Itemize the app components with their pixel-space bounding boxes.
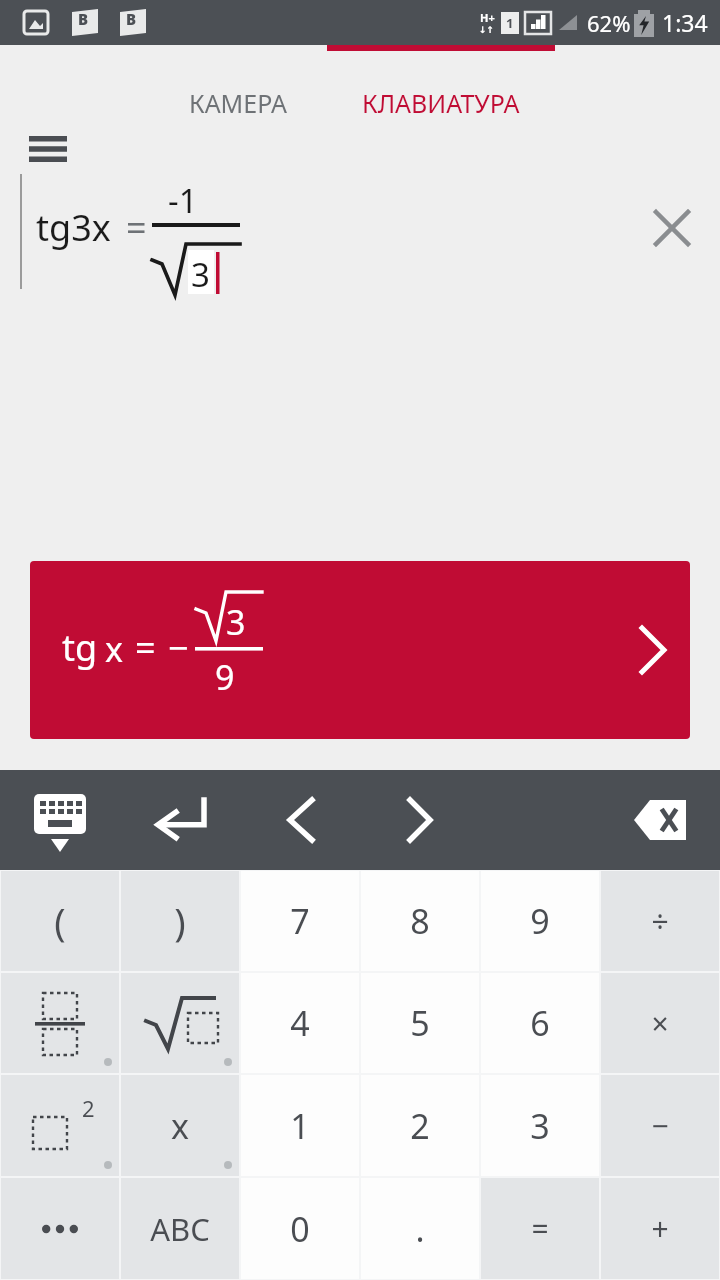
staticText: − [168,623,189,672]
button[interactable]: 6 [481,973,599,1073]
button[interactable]: КАМЕРА [150,51,325,155]
staticText: 5 [410,1000,430,1046]
button[interactable]: 5 [361,973,479,1073]
button[interactable]: Menu [14,115,82,183]
button[interactable]: + [601,1178,719,1279]
button[interactable]: 9 [481,871,599,971]
button[interactable]: ) [121,871,239,971]
staticText: x [105,626,123,672]
button[interactable]: . [361,1178,479,1279]
staticText: ↓↑ [479,25,495,35]
staticText: 7 [290,898,310,944]
staticText: КЛАВИАТУРА [362,86,520,120]
staticText: ÷ [651,901,669,942]
staticText: 3 [191,252,210,297]
button[interactable]: x [121,1075,239,1176]
button[interactable]: 8 [361,871,479,971]
button[interactable]: 4 [241,973,359,1073]
button[interactable]: 3 [481,1075,599,1176]
staticText: × [651,1003,669,1044]
staticText: 4 [290,1000,310,1046]
button[interactable]: Square [1,1075,119,1176]
staticText: . [415,1206,425,1252]
button[interactable]: Square root [121,973,239,1073]
staticText: -1 [168,178,198,223]
button[interactable]: 1 [241,1075,359,1176]
staticText: ABC [150,1208,210,1250]
staticText: tg [62,623,98,672]
button[interactable]: КЛАВИАТУРА [327,51,555,155]
staticText: x [171,1103,189,1149]
button[interactable]: Clear [638,194,706,262]
staticText: КАМЕРА [189,86,287,120]
staticText: 9 [530,898,550,944]
staticText: = [531,1208,549,1249]
button[interactable]: Hide keyboard [20,782,100,858]
staticText: 1 [290,1103,310,1149]
staticText: tg3x [36,203,111,252]
staticText: + [651,1208,669,1249]
button[interactable]: × [601,973,719,1073]
button[interactable]: ABC [121,1178,239,1279]
staticText: − [651,1105,669,1146]
staticText: 3 [226,599,246,645]
staticText: H+ [480,10,495,25]
button[interactable]: 7 [241,871,359,971]
button[interactable]: 0 [241,1178,359,1279]
button[interactable]: 2 [361,1075,479,1176]
button[interactable]: More [1,1178,119,1279]
staticText: 1 [506,14,514,32]
button[interactable]: Enter [140,782,220,858]
staticText: 2 [82,1093,95,1123]
staticText: ( [54,895,66,947]
button[interactable]: = [481,1178,599,1279]
staticText: 2 [410,1103,430,1149]
staticText: B [126,9,137,29]
staticText: 0 [290,1206,310,1252]
staticText: 3 [530,1103,550,1149]
staticText: 8 [410,898,430,944]
staticText: = [126,203,147,252]
staticText: B [78,9,89,29]
button[interactable]: Backspace [622,782,698,858]
staticText: 1:34 [662,7,708,38]
staticText: ) [174,895,186,947]
staticText: 9 [215,654,235,700]
staticText: = [135,623,156,672]
button[interactable]: Move right [382,782,458,858]
staticText: 62% [587,8,631,38]
staticText: 6 [530,1000,550,1046]
button[interactable]: Move left [262,782,338,858]
button[interactable]: ÷ [601,871,719,971]
button[interactable]: Fraction [1,973,119,1073]
button[interactable]: − [601,1075,719,1176]
button[interactable]: tg [30,561,690,739]
button[interactable]: ( [1,871,119,971]
